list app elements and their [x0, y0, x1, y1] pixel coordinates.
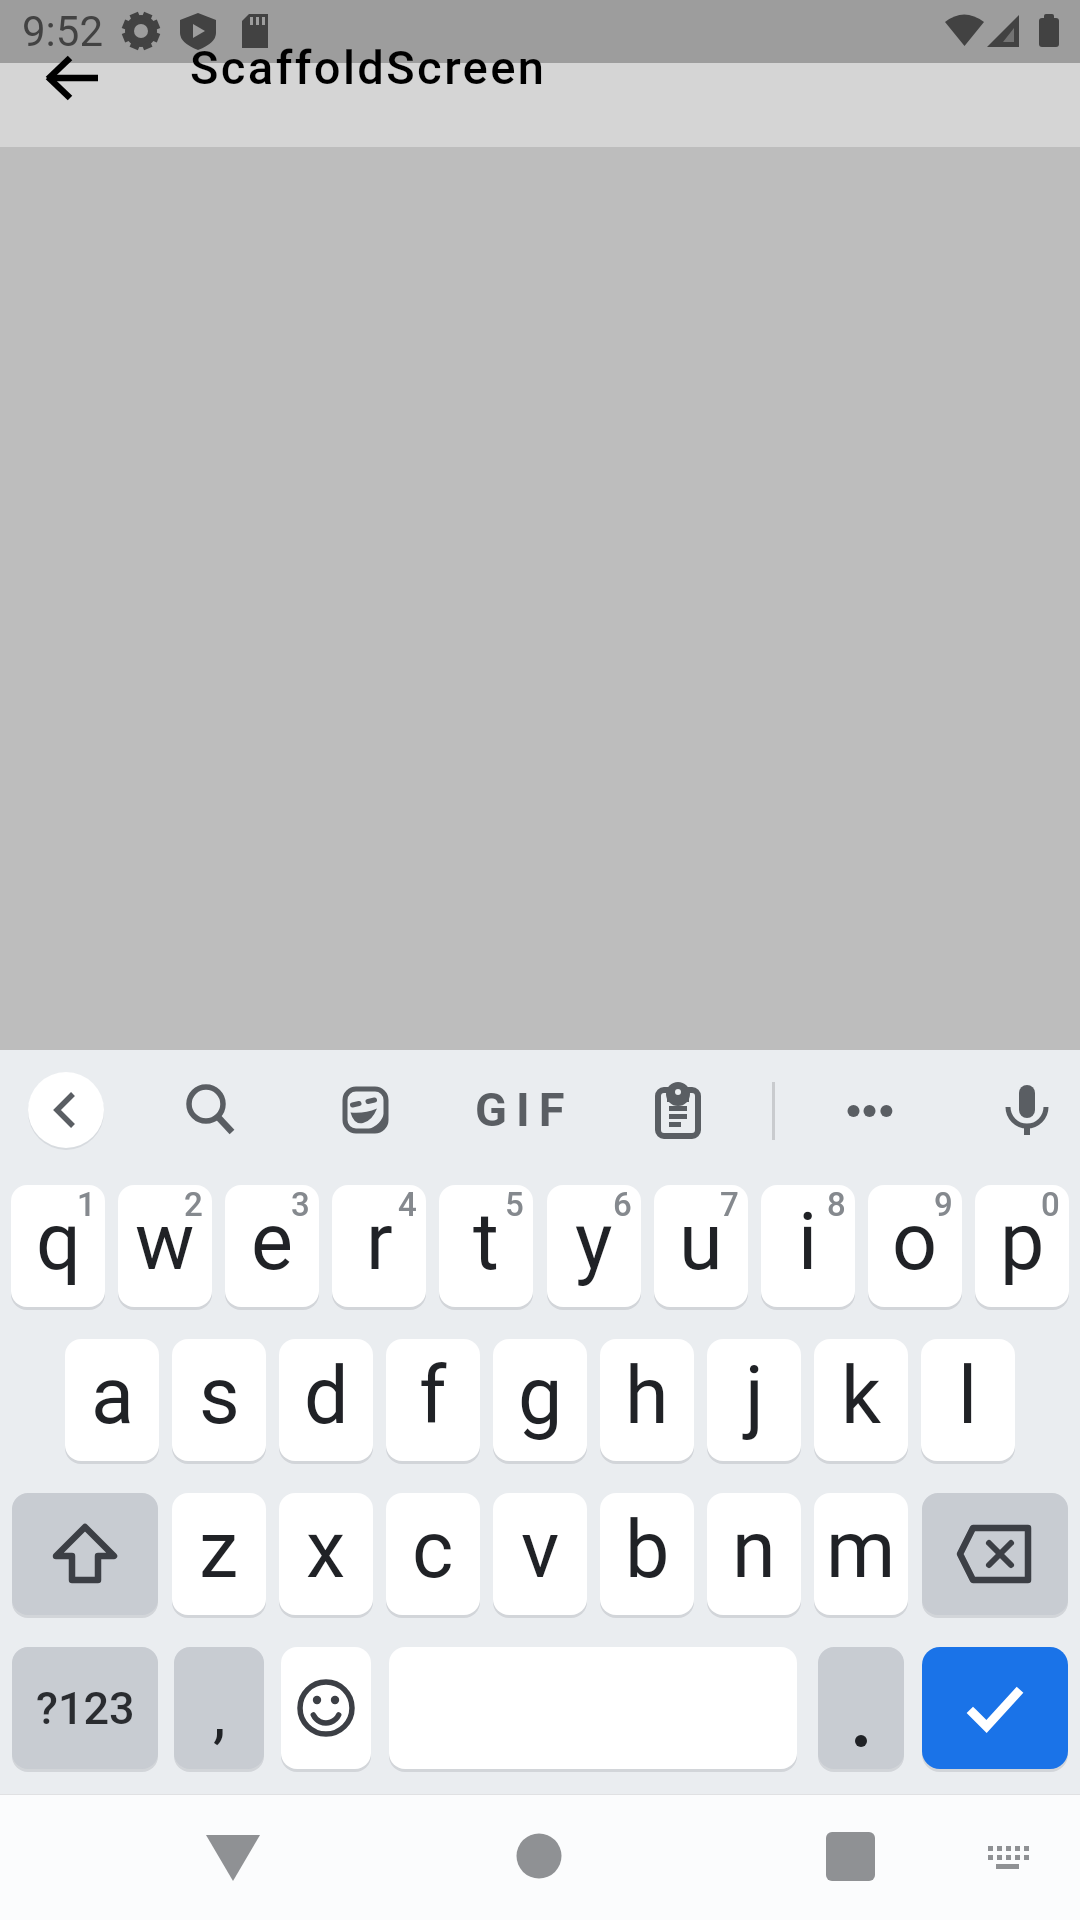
staticText: 2	[184, 1185, 203, 1224]
staticText: 0	[1041, 1185, 1060, 1224]
staticText: i	[798, 1196, 818, 1289]
button[interactable]: o	[868, 1185, 962, 1307]
button[interactable]: b	[600, 1493, 694, 1615]
staticText: 6	[613, 1185, 632, 1224]
staticText: m	[826, 1504, 896, 1597]
button[interactable]: a	[65, 1339, 159, 1461]
button[interactable]	[28, 1072, 104, 1148]
staticText: j	[745, 1350, 764, 1443]
staticText: c	[412, 1504, 454, 1597]
button[interactable]: t	[439, 1185, 533, 1307]
button[interactable]: i	[761, 1185, 855, 1307]
staticText: ,	[213, 1677, 226, 1752]
button[interactable]	[40, 44, 110, 112]
staticText: v	[521, 1504, 560, 1597]
button[interactable]: n	[707, 1493, 801, 1615]
staticText: 4	[398, 1185, 417, 1224]
button[interactable]: y	[547, 1185, 641, 1307]
button[interactable]: k	[814, 1339, 908, 1461]
staticText: d	[304, 1350, 349, 1443]
staticText: f	[419, 1350, 447, 1443]
staticText: o	[892, 1196, 938, 1289]
button[interactable]	[922, 1493, 1068, 1615]
staticText: p	[1000, 1196, 1045, 1289]
button[interactable]	[199, 1822, 267, 1890]
button[interactable]: GIF	[466, 1078, 574, 1140]
staticText: r	[366, 1196, 393, 1289]
button[interactable]: m	[814, 1493, 908, 1615]
button[interactable]: u	[654, 1185, 748, 1307]
staticText: 9	[934, 1185, 953, 1224]
button[interactable]: ?123	[12, 1647, 158, 1769]
staticText: k	[841, 1350, 882, 1443]
button[interactable]	[834, 1074, 906, 1146]
button[interactable]	[642, 1074, 714, 1146]
button[interactable]: z	[172, 1493, 266, 1615]
button[interactable]	[991, 1074, 1063, 1146]
button[interactable]: d	[279, 1339, 373, 1461]
staticText: h	[625, 1350, 669, 1443]
button[interactable]	[12, 1493, 158, 1615]
button[interactable]: f	[386, 1339, 480, 1461]
button[interactable]	[818, 1647, 904, 1769]
staticText: u	[679, 1196, 723, 1289]
button[interactable]: h	[600, 1339, 694, 1461]
button[interactable]: g	[493, 1339, 587, 1461]
staticText: 1	[77, 1185, 96, 1224]
button[interactable]: c	[386, 1493, 480, 1615]
staticText: 3	[291, 1185, 310, 1224]
staticText: ?123	[36, 1682, 135, 1735]
button[interactable]: x	[279, 1493, 373, 1615]
button[interactable]: r	[332, 1185, 426, 1307]
button[interactable]	[172, 1074, 244, 1146]
staticText: 8	[827, 1185, 846, 1224]
staticText: GIF	[475, 1082, 574, 1137]
button[interactable]	[281, 1647, 371, 1769]
staticText: ScaffoldScreen	[190, 40, 547, 95]
staticText: g	[518, 1350, 563, 1443]
staticText: z	[199, 1504, 239, 1597]
staticText: q	[36, 1196, 81, 1289]
button[interactable]: ,	[174, 1647, 264, 1769]
button[interactable]: j	[707, 1339, 801, 1461]
button[interactable]: v	[493, 1493, 587, 1615]
button[interactable]: q	[11, 1185, 105, 1307]
staticText: n	[732, 1504, 776, 1597]
staticText: l	[958, 1350, 978, 1443]
staticText: a	[91, 1350, 134, 1443]
staticText: t	[473, 1196, 499, 1289]
button[interactable]	[329, 1074, 401, 1146]
staticText: s	[199, 1350, 240, 1443]
button[interactable]: l	[921, 1339, 1015, 1461]
staticText: b	[625, 1504, 670, 1597]
staticText: x	[306, 1504, 346, 1597]
button[interactable]: p	[975, 1185, 1069, 1307]
staticText: y	[575, 1196, 613, 1289]
button[interactable]: s	[172, 1339, 266, 1461]
button[interactable]: w	[118, 1185, 212, 1307]
staticText: w	[135, 1196, 195, 1289]
button[interactable]	[505, 1822, 573, 1890]
button[interactable]	[979, 1822, 1047, 1890]
button[interactable]: e	[225, 1185, 319, 1307]
staticText: 7	[720, 1185, 739, 1224]
staticText: 9:52	[22, 7, 103, 56]
staticText: 5	[505, 1185, 524, 1224]
button[interactable]	[816, 1822, 884, 1890]
button[interactable]	[922, 1647, 1068, 1769]
staticText: e	[251, 1196, 293, 1289]
